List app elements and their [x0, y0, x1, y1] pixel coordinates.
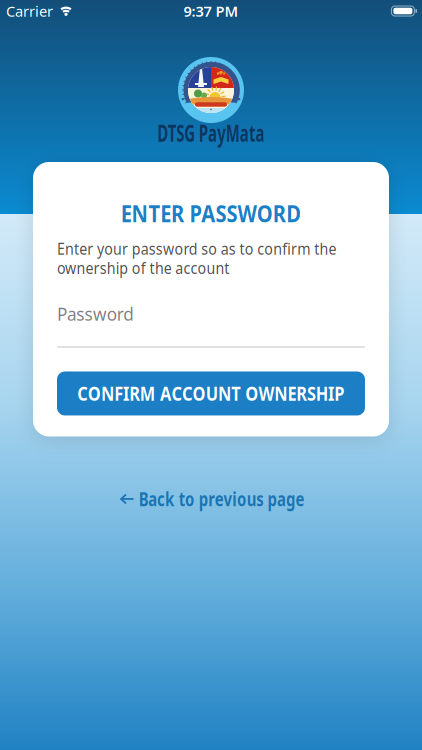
staticText: ENTER PASSWORD [103, 197, 318, 229]
button[interactable]: Back to previous page [111, 484, 310, 513]
staticText: CONFIRM ACCOUNT OWNERSHIP [59, 381, 363, 406]
staticText: Carrier [6, 1, 53, 21]
staticText: Back to previous page [118, 487, 325, 511]
staticText: 9:37 PM [183, 1, 238, 21]
staticText: Password [57, 301, 140, 326]
staticText: ownership of the account [57, 257, 251, 278]
button[interactable]: Password [57, 304, 365, 347]
staticText: Enter your password so as to confirm the [57, 238, 371, 259]
staticText: DTSG PayMata [129, 118, 292, 148]
button[interactable]: CONFIRM ACCOUNT OWNERSHIP [57, 371, 365, 415]
